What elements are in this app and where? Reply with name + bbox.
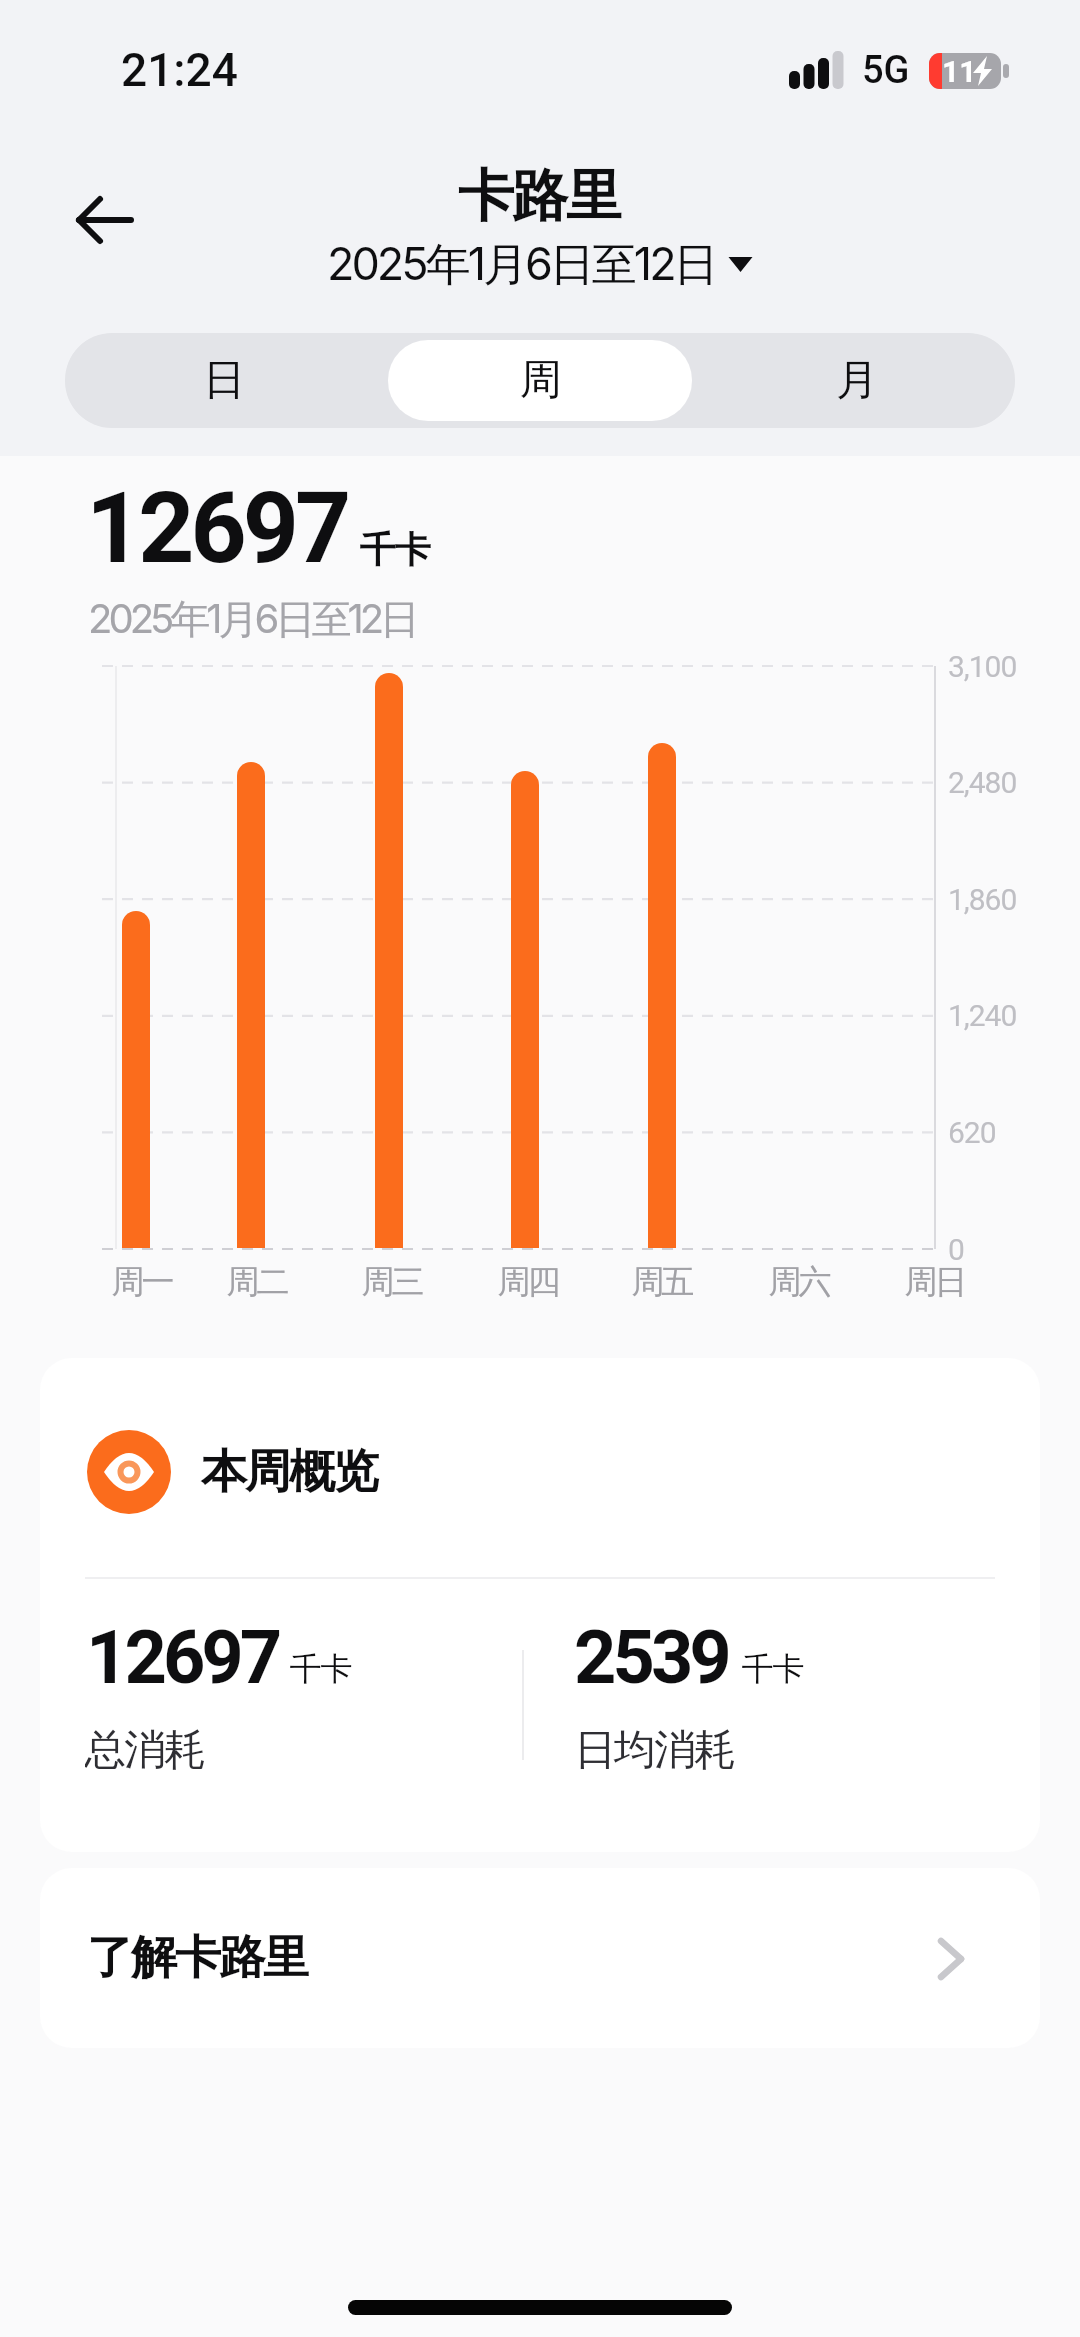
button[interactable]: 2025年1月6日至12日 xyxy=(0,236,1080,290)
button[interactable]: 了解卡路里 xyxy=(40,1868,1040,2048)
staticText: 周四 xyxy=(499,1261,559,1303)
staticText: 1,240 xyxy=(948,998,1017,1033)
staticText: 千卡 xyxy=(742,1649,804,1689)
staticText: 21:24 xyxy=(121,43,238,97)
staticText: 日均消耗 xyxy=(575,1724,735,1776)
staticText: 周五 xyxy=(633,1261,693,1303)
staticText: 周 xyxy=(520,354,562,407)
button[interactable]: 周 xyxy=(382,333,699,428)
button[interactable]: 月 xyxy=(699,333,1015,428)
staticText: 3,100 xyxy=(948,649,1017,684)
staticText: 本周概览 xyxy=(202,1443,378,1501)
staticText: 卡路里 xyxy=(459,161,621,232)
staticText: 周日 xyxy=(906,1261,966,1303)
staticText: 12697 xyxy=(86,1614,279,1701)
button[interactable]: 日 xyxy=(65,333,382,428)
staticText: 周一 xyxy=(113,1261,173,1303)
staticText: 12697 xyxy=(86,471,348,586)
staticText: 2539 xyxy=(574,1614,728,1701)
staticText: 周二 xyxy=(228,1261,288,1303)
staticText: 周六 xyxy=(770,1261,830,1303)
staticText: 2025年1月6日至12日 xyxy=(88,594,417,642)
staticText: 0 xyxy=(948,1232,964,1267)
staticText: 了解卡路里 xyxy=(88,1929,308,1987)
staticText: 千卡 xyxy=(360,527,430,572)
staticText: 2025年1月6日至12日 xyxy=(327,236,716,290)
staticText: 千卡 xyxy=(290,1649,352,1689)
staticText: 11 xyxy=(942,54,977,89)
staticText: 2,480 xyxy=(948,765,1017,800)
button[interactable] xyxy=(60,180,150,260)
staticText: 总消耗 xyxy=(85,1724,205,1776)
staticText: 1,860 xyxy=(948,882,1017,917)
staticText: 5G xyxy=(862,48,910,93)
staticText: 日 xyxy=(203,354,245,407)
staticText: 周三 xyxy=(363,1261,423,1303)
staticText: 月 xyxy=(836,354,878,407)
staticText: 620 xyxy=(948,1115,996,1150)
